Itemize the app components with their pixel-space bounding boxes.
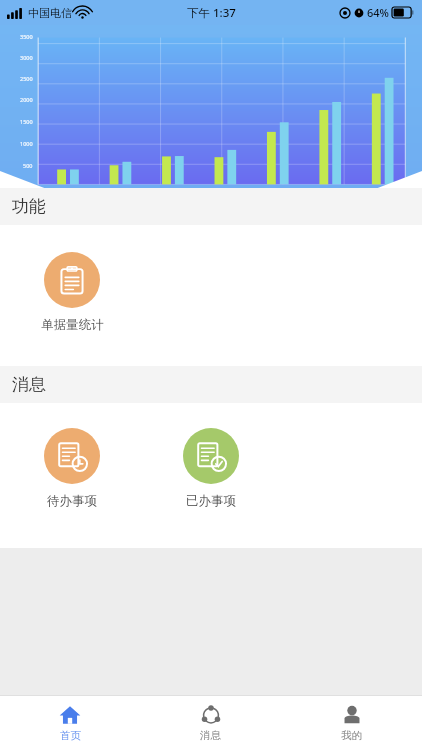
staticText: 首页 <box>60 729 81 742</box>
staticText: 单据量统计 <box>41 317 104 333</box>
staticText: 下午 1:37 <box>187 5 236 21</box>
button[interactable]: Messages <box>140 696 281 750</box>
staticText: 我的 <box>341 729 362 742</box>
staticText: 2500 <box>20 75 33 82</box>
staticText: 功能 <box>12 196 46 217</box>
staticText: 3500 <box>20 33 33 40</box>
staticText: 3000 <box>20 54 33 61</box>
staticText: 64% <box>367 5 389 20</box>
button[interactable]: Home <box>0 696 140 750</box>
staticText: 待办事项 <box>47 493 97 509</box>
staticText: 消息 <box>12 374 46 395</box>
staticText: 500 <box>23 162 33 169</box>
staticText: 中国电信 <box>28 6 72 20</box>
button[interactable]: 已办事项 <box>171 428 251 509</box>
button[interactable]: 待办事项 <box>32 428 112 509</box>
staticText: 1000 <box>20 140 33 147</box>
staticText: 已办事项 <box>186 493 236 509</box>
staticText: 消息 <box>200 729 221 742</box>
staticText: 2000 <box>20 96 33 103</box>
button[interactable]: 单据量统计 <box>32 252 112 333</box>
button[interactable]: Profile <box>281 696 422 750</box>
staticText: 1500 <box>20 118 33 125</box>
